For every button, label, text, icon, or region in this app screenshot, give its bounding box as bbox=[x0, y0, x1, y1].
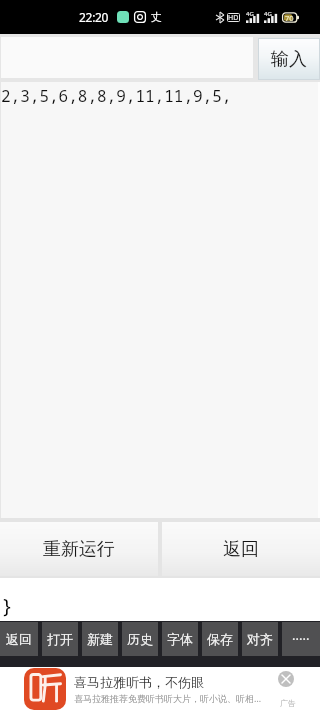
staticText: 2,3,5,6,8,8,9,11,11,9,5, bbox=[1, 85, 232, 107]
staticText: ····· bbox=[292, 630, 310, 648]
staticText: 丈 bbox=[151, 10, 162, 24]
staticText: 历史 bbox=[127, 631, 153, 647]
button[interactable]: 返回 bbox=[162, 522, 320, 576]
staticText: 新建 bbox=[87, 631, 113, 647]
button[interactable]: 对齐 bbox=[242, 622, 278, 656]
staticText: 输入 bbox=[271, 48, 307, 71]
button[interactable]: ····· bbox=[282, 622, 320, 656]
staticText: 重新运行 bbox=[43, 538, 115, 561]
staticText: 对齐 bbox=[247, 631, 273, 647]
staticText: 4G bbox=[246, 10, 254, 18]
staticText: HD bbox=[228, 13, 239, 22]
staticText: 70 bbox=[285, 13, 294, 23]
staticText: 字体 bbox=[167, 631, 193, 647]
button[interactable]: 历史 bbox=[122, 622, 158, 656]
button[interactable]: 保存 bbox=[202, 622, 238, 656]
button[interactable]: 喜马拉雅听书，不伤眼 bbox=[0, 667, 320, 711]
button[interactable]: 字体 bbox=[162, 622, 198, 656]
staticText: } bbox=[1, 592, 13, 619]
staticText: 22:20 bbox=[79, 9, 109, 25]
button[interactable]: 重新运行 bbox=[0, 522, 158, 576]
staticText: 4G bbox=[264, 10, 272, 18]
staticText: 喜马拉雅听书，不伤眼 bbox=[74, 674, 204, 690]
button[interactable]: 返回 bbox=[0, 622, 38, 656]
staticText: 返回 bbox=[6, 631, 32, 647]
staticText: 返回 bbox=[223, 538, 259, 561]
button[interactable]: 新建 bbox=[82, 622, 118, 656]
button[interactable]: Close ad bbox=[272, 665, 300, 693]
staticText: 打开 bbox=[47, 631, 73, 647]
staticText: 保存 bbox=[207, 631, 233, 647]
staticText: 喜马拉雅推荐免费听书听大片，听小说、听相… bbox=[74, 692, 262, 704]
button[interactable]: 输入 bbox=[258, 38, 320, 80]
button[interactable]: 打开 bbox=[42, 622, 78, 656]
staticText: 广告 bbox=[280, 698, 296, 708]
